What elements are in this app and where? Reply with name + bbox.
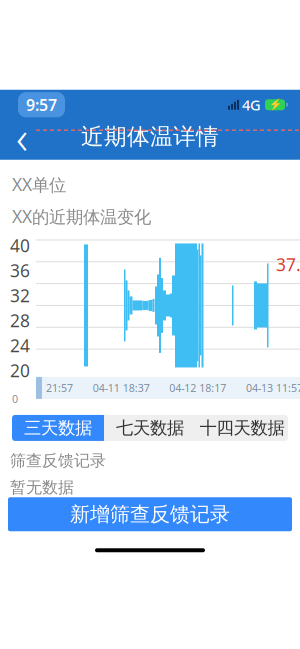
staticText: 32 (10, 284, 30, 307)
staticText: ‹ (16, 107, 28, 167)
staticText: 近期体温详情 (81, 123, 219, 151)
staticText: 0 (12, 392, 18, 406)
staticText: 04-11 18:37 (93, 381, 150, 395)
button[interactable]: 三天数据 (12, 415, 104, 441)
staticText: 4G (242, 95, 261, 114)
staticText: 暂无数据 (10, 478, 74, 497)
staticText: 9:57 (26, 94, 57, 115)
button[interactable]: Back (0, 120, 44, 154)
staticText: 04-13 11:57 (246, 381, 300, 395)
staticText: 40 (10, 234, 30, 257)
staticText: 04-12 18:17 (169, 381, 226, 395)
button[interactable]: 新增筛查反馈记录 (8, 497, 292, 531)
staticText: 28 (10, 309, 30, 332)
staticText: XX单位 (12, 173, 66, 196)
staticText: 20 (10, 359, 30, 382)
staticText: ⚡ (268, 99, 281, 111)
staticText: 三天数据 (24, 417, 92, 439)
staticText: 37.3 (276, 253, 300, 276)
staticText: XX的近期体温变化 (12, 205, 151, 228)
button[interactable]: 七天数据 (104, 415, 196, 441)
button[interactable]: 十四天数据 (196, 415, 288, 441)
staticText: 筛查反馈记录 (10, 451, 106, 471)
staticText: 36 (10, 259, 30, 282)
staticText: 七天数据 (116, 417, 184, 439)
staticText: 21:57 (46, 381, 73, 395)
staticText: 新增筛查反馈记录 (70, 502, 230, 527)
staticText: 十四天数据 (199, 417, 284, 439)
staticText: 24 (10, 334, 30, 357)
